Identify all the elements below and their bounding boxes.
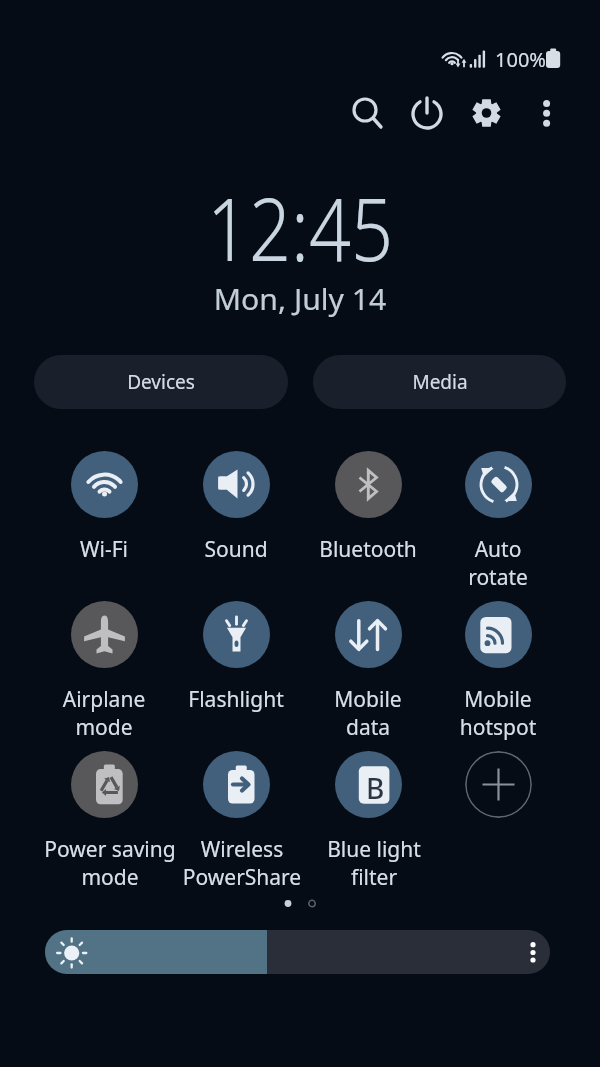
staticText: Devices [127,369,195,395]
button[interactable]: Mobile hotspot [432,595,564,725]
button[interactable]: Settings [463,89,511,137]
button[interactable]: Auto rotate [432,445,564,575]
staticText: Mobile hotspot [432,685,564,741]
staticText: 12:45 [43,169,556,286]
staticText: Mon, July 14 [0,279,600,318]
staticText: Auto rotate [432,535,564,591]
staticText: Wi-Fi [38,535,170,564]
staticText: Flashlight [170,685,302,714]
staticText: Blue light filter [308,835,440,891]
button[interactable]: Sound [170,445,302,575]
button[interactable]: Media [313,355,566,409]
staticText: Media [412,369,468,395]
staticText: B [366,769,385,801]
staticText: Power saving mode [44,835,176,891]
button[interactable]: Mobile data [302,595,434,725]
button[interactable]: Search [341,89,389,137]
button[interactable]: Power saving mode [38,745,170,875]
button[interactable]: Airplane mode [38,595,170,725]
button[interactable]: Brightness [45,930,550,974]
button[interactable]: Add tile [465,751,532,818]
button[interactable]: B [302,745,434,875]
button[interactable]: Bluetooth [302,445,434,575]
staticText: 100% [495,46,546,73]
button[interactable]: Flashlight [170,595,302,725]
button[interactable]: Devices [34,355,288,409]
button[interactable]: Wireless PowerShare [170,745,302,875]
staticText: Airplane mode [38,685,170,741]
staticText: Mobile data [302,685,434,741]
staticText: Sound [170,535,302,564]
button[interactable]: Power off [403,89,451,137]
staticText: Bluetooth [302,535,434,564]
staticText: Wireless PowerShare [176,835,308,891]
button[interactable]: More options [523,89,571,137]
button[interactable]: Wi-Fi [38,445,170,575]
